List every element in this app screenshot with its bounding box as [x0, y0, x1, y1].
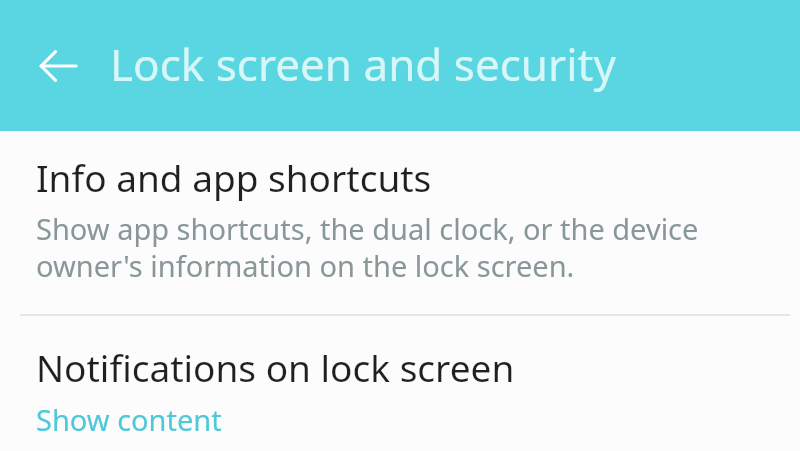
button[interactable]: Notifications on lock screen [0, 316, 800, 447]
staticText: Lock screen and security [110, 34, 616, 94]
staticText: Show content [36, 400, 222, 439]
button[interactable]: Info and app shortcuts [0, 131, 800, 294]
staticText: Show app shortcuts, the dual clock, or t… [36, 209, 726, 286]
staticText: Notifications on lock screen [36, 342, 515, 392]
button[interactable]: Navigate up [26, 34, 90, 98]
staticText: Info and app shortcuts [36, 152, 432, 202]
